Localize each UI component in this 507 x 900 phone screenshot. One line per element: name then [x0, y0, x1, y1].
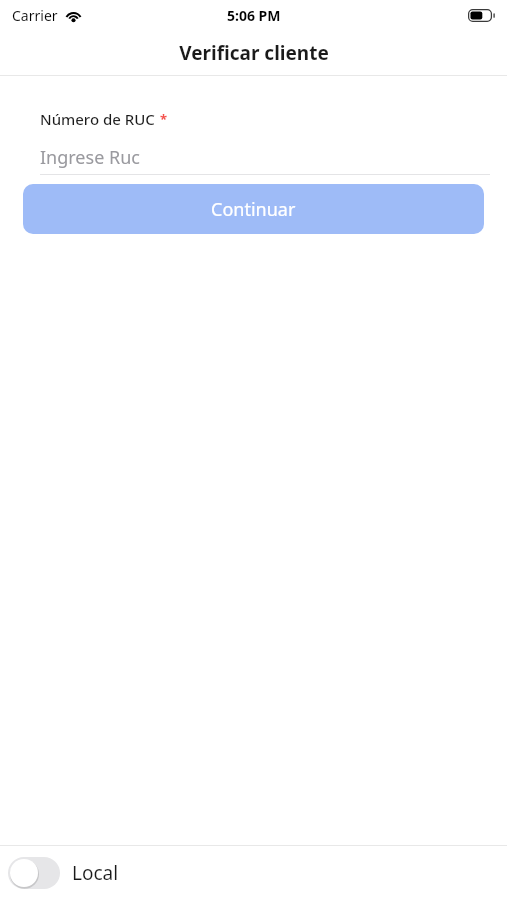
- staticText: Verificar cliente: [179, 40, 329, 66]
- button[interactable]: Continuar: [23, 184, 484, 234]
- staticText: Ingrese Ruc: [40, 145, 140, 170]
- staticText: 5:06 PM: [227, 6, 281, 25]
- button[interactable]: Local toggle: [8, 857, 60, 889]
- staticText: Carrier: [12, 6, 58, 25]
- button[interactable]: Local toggle: [0, 846, 507, 900]
- other: Wi-Fi: [65, 9, 82, 22]
- staticText: Continuar: [211, 197, 296, 222]
- staticText: *: [160, 110, 168, 128]
- staticText: Número de RUC: [40, 109, 155, 129]
- other: Battery: [468, 9, 495, 22]
- staticText: Local: [72, 860, 119, 886]
- button[interactable]: Ingrese Ruc: [40, 141, 490, 175]
